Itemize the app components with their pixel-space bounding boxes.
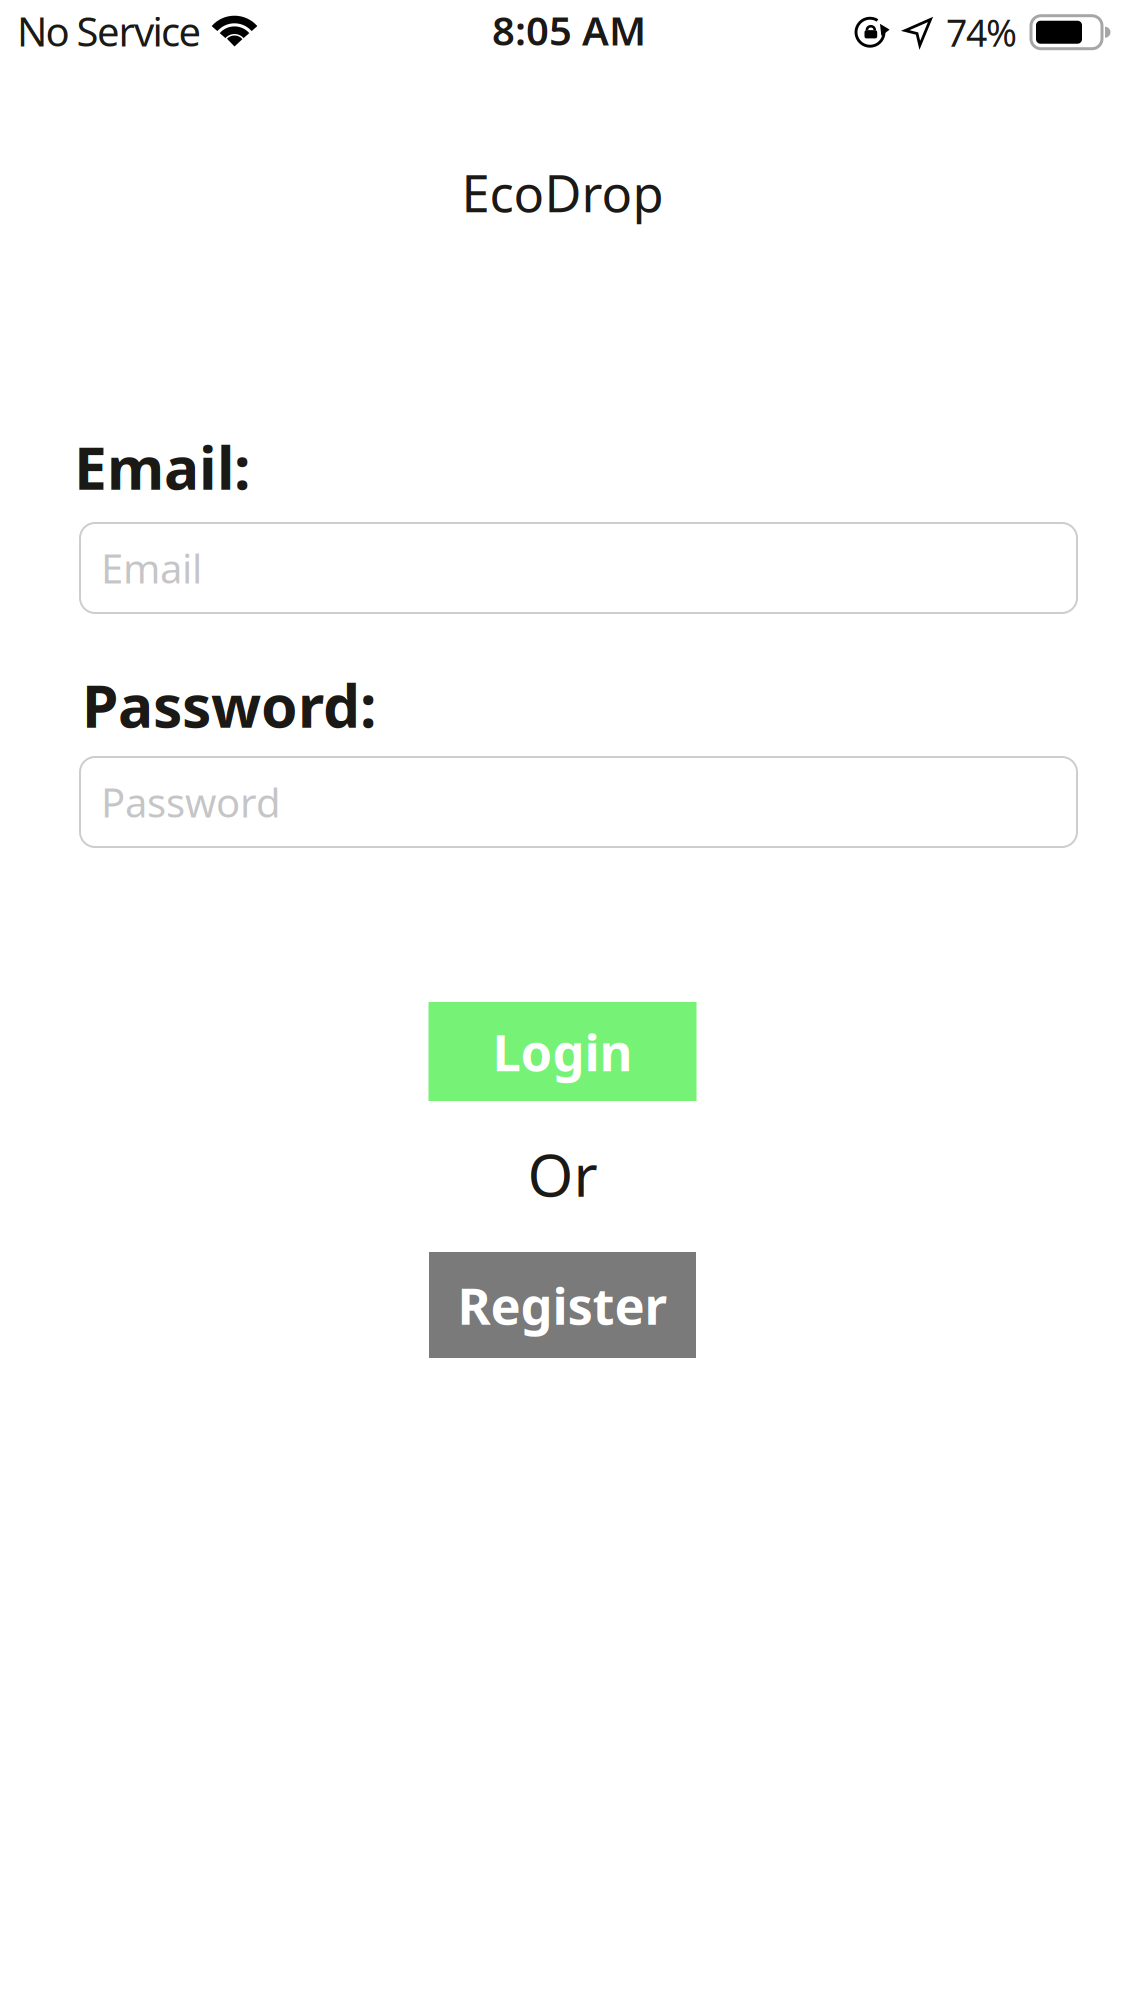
staticText: 8:05 AM: [492, 3, 646, 56]
staticText: Password: [101, 775, 281, 828]
staticText: Email: [101, 541, 202, 594]
staticText: Password:: [82, 666, 376, 744]
staticText: Email:: [74, 428, 250, 506]
staticText: Login: [492, 1018, 632, 1085]
staticText: Register: [457, 1271, 667, 1339]
staticText: Or: [527, 1135, 597, 1213]
button[interactable]: Login: [428, 1002, 696, 1101]
textField[interactable]: Password: [80, 757, 1077, 847]
staticText: 74%: [946, 7, 1017, 57]
textField[interactable]: Email: [80, 523, 1077, 613]
staticText: No Service: [17, 4, 201, 57]
staticText: EcoDrop: [461, 159, 663, 226]
button[interactable]: Register: [429, 1252, 696, 1358]
